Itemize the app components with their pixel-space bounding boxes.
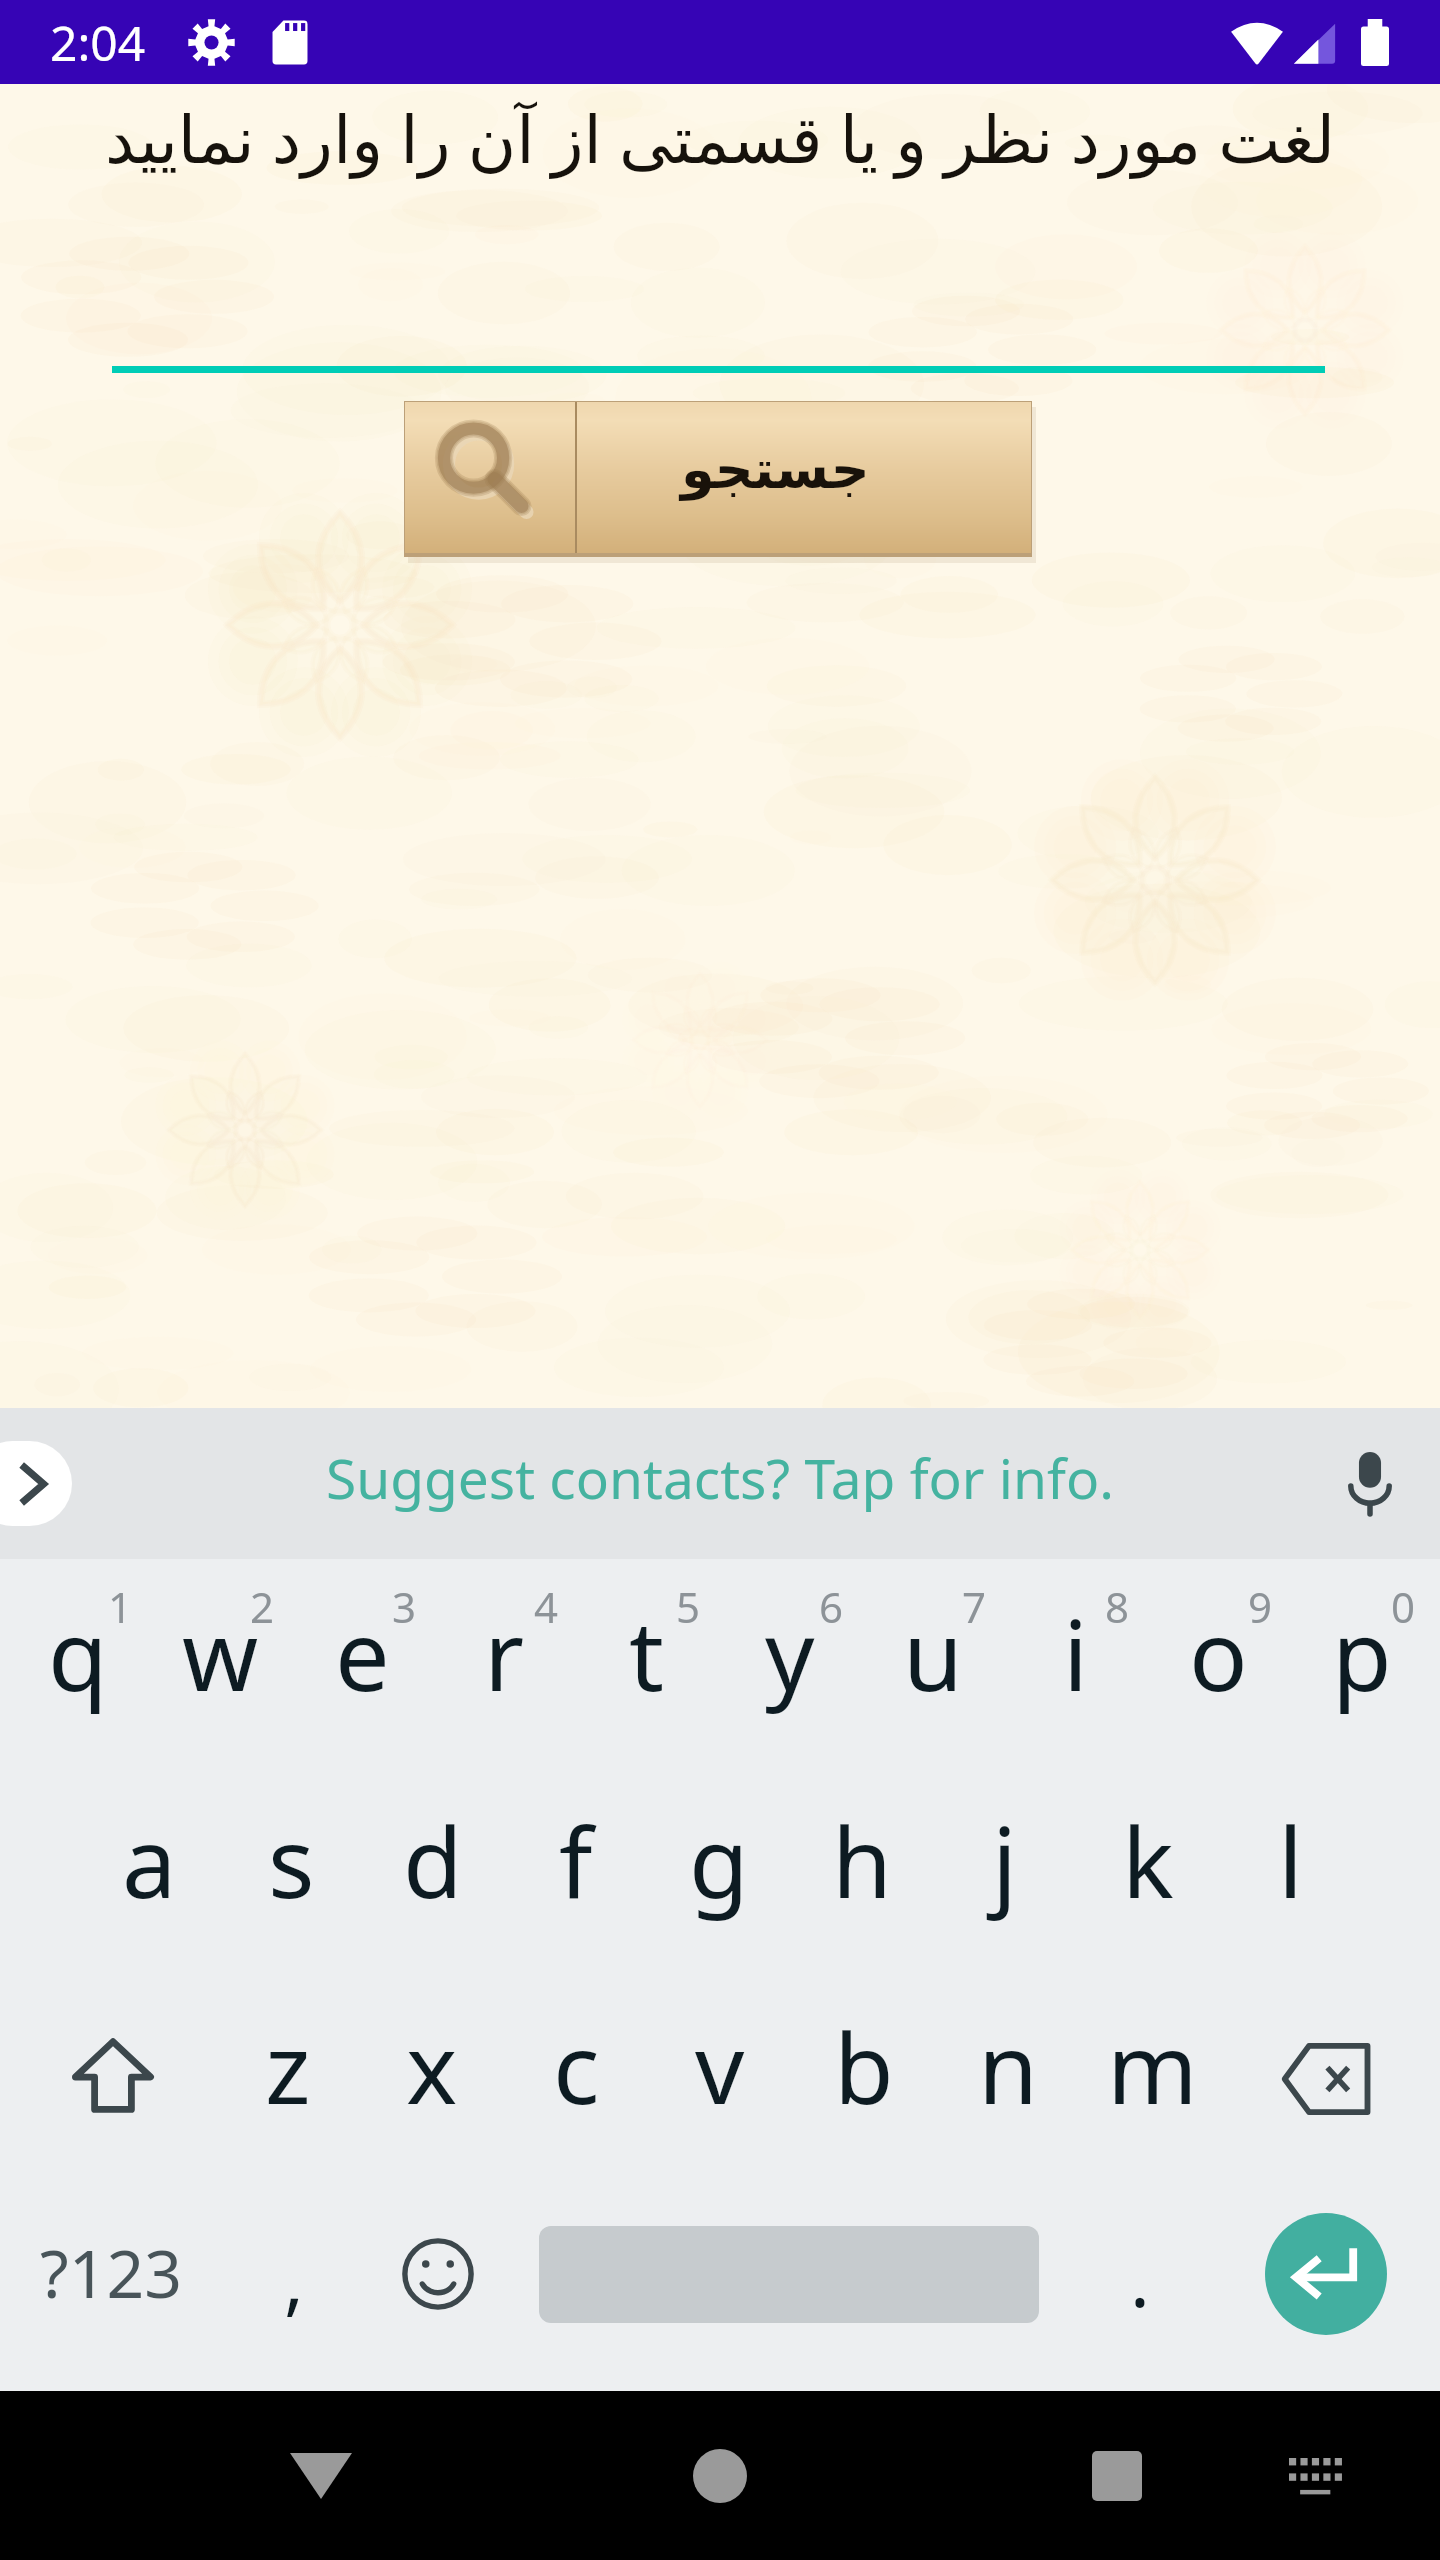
button[interactable]: Enter xyxy=(1265,2213,1387,2335)
button[interactable]: f xyxy=(504,1767,647,1975)
button[interactable]: 2 xyxy=(149,1559,291,1767)
button[interactable]: 6 xyxy=(718,1559,861,1767)
button[interactable]: Voice input xyxy=(1300,1408,1440,1559)
button[interactable]: Recents xyxy=(1064,2391,1170,2560)
staticText: w xyxy=(182,1587,259,1719)
button[interactable]: جستجو xyxy=(405,402,1031,553)
staticText: q xyxy=(48,1587,108,1719)
button[interactable]: z xyxy=(216,1975,360,2183)
staticText: a xyxy=(122,1794,177,1926)
staticText: لغت مورد نظر و یا قسمتی از آن را وارد نم… xyxy=(0,92,1440,182)
button[interactable]: Shift xyxy=(0,1975,216,2183)
button[interactable]: Home xyxy=(667,2391,773,2560)
staticText: y xyxy=(765,1587,815,1719)
button[interactable]: d xyxy=(362,1767,504,1975)
button[interactable]: Backspace xyxy=(1224,1975,1440,2183)
button[interactable]: x xyxy=(360,1975,504,2183)
staticText: t xyxy=(629,1587,665,1719)
staticText: j xyxy=(992,1794,1018,1926)
staticText: 7 xyxy=(962,1578,987,1635)
button[interactable]: b xyxy=(792,1975,936,2183)
button[interactable]: 0 xyxy=(1290,1559,1433,1767)
staticText: . xyxy=(1130,2228,1150,2329)
button[interactable]: j xyxy=(933,1767,1076,1975)
button[interactable]: 9 xyxy=(1147,1559,1290,1767)
staticText: جستجو xyxy=(681,438,870,501)
staticText: 0 xyxy=(1391,1578,1416,1635)
button[interactable]: g xyxy=(647,1767,790,1975)
staticText: 5 xyxy=(676,1578,701,1635)
staticText: d xyxy=(403,1794,463,1926)
button[interactable]: Back xyxy=(268,2391,374,2560)
staticText: g xyxy=(689,1794,749,1926)
button[interactable]: a xyxy=(78,1767,220,1975)
button[interactable]: Suggest contacts? Tap for info. xyxy=(0,1408,1440,1559)
staticText: 2 xyxy=(250,1578,275,1635)
staticText: z xyxy=(265,2000,311,2132)
button[interactable]: m xyxy=(1080,1975,1224,2183)
button[interactable]: . xyxy=(1068,2170,1212,2378)
staticText: Suggest contacts? Tap for info. xyxy=(326,1440,1114,1515)
staticText: r xyxy=(484,1587,525,1719)
staticText: 3 xyxy=(392,1578,417,1635)
staticText: 9 xyxy=(1248,1578,1273,1635)
button[interactable]: Hide keyboard xyxy=(1262,2391,1368,2560)
button[interactable]: 4 xyxy=(433,1559,575,1767)
staticText: h xyxy=(832,1794,892,1926)
button[interactable]: k xyxy=(1076,1767,1219,1975)
staticText: u xyxy=(903,1587,963,1719)
button[interactable]: ?123 xyxy=(0,2170,222,2378)
staticText: s xyxy=(268,1794,315,1926)
staticText: f xyxy=(559,1794,593,1926)
staticText: i xyxy=(1063,1587,1089,1719)
button[interactable]: n xyxy=(936,1975,1080,2183)
button[interactable]: c xyxy=(504,1975,648,2183)
button[interactable]: Search word input xyxy=(112,266,1325,373)
staticText: 8 xyxy=(1105,1578,1130,1635)
staticText: l xyxy=(1278,1794,1304,1926)
staticText: 2:04 xyxy=(50,10,146,75)
staticText: p xyxy=(1332,1587,1392,1719)
staticText: b xyxy=(834,2000,894,2132)
staticText: , xyxy=(284,2228,304,2329)
staticText: o xyxy=(1189,1587,1248,1719)
button[interactable]: 3 xyxy=(291,1559,433,1767)
staticText: m xyxy=(1107,2000,1198,2132)
button[interactable]: , xyxy=(222,2170,366,2378)
staticText: v xyxy=(695,2000,745,2132)
button[interactable]: 7 xyxy=(861,1559,1004,1767)
button[interactable]: Emoji xyxy=(366,2170,510,2378)
staticText: e xyxy=(335,1587,390,1719)
staticText: 4 xyxy=(534,1578,559,1635)
button[interactable]: s xyxy=(220,1767,362,1975)
staticText: 6 xyxy=(819,1578,844,1635)
button[interactable]: v xyxy=(648,1975,792,2183)
staticText: k xyxy=(1122,1794,1174,1926)
staticText: c xyxy=(553,2000,600,2132)
button[interactable]: h xyxy=(790,1767,933,1975)
button[interactable]: l xyxy=(1219,1767,1362,1975)
staticText: 1 xyxy=(108,1578,133,1635)
button[interactable]: 8 xyxy=(1004,1559,1147,1767)
button[interactable]: 5 xyxy=(575,1559,718,1767)
button[interactable]: 1 xyxy=(7,1559,149,1767)
staticText: x xyxy=(406,2000,458,2132)
staticText: n xyxy=(978,2000,1038,2132)
button[interactable]: More suggestions xyxy=(0,1441,72,1526)
staticText: ?123 xyxy=(40,2227,182,2317)
